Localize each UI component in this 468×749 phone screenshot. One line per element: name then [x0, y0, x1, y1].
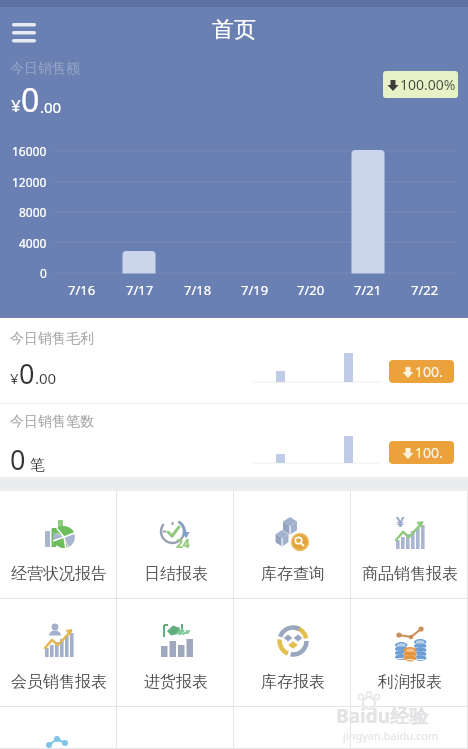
- staticText: 100.: [415, 443, 443, 462]
- staticText: 7/17: [126, 281, 154, 299]
- staticText: 首页: [212, 16, 256, 44]
- staticText: 0: [19, 355, 35, 392]
- staticText: .00: [35, 368, 57, 388]
- button[interactable]: 进货报表: [117, 599, 234, 707]
- staticText: 今日销售毛利: [10, 330, 94, 348]
- button[interactable]: 今日销售毛利: [0, 318, 468, 403]
- staticText: 7/21: [354, 281, 382, 299]
- staticText: 16000: [12, 143, 47, 159]
- staticText: ¥: [10, 368, 19, 388]
- button[interactable]: 100.: [389, 360, 454, 383]
- staticText: ¥: [11, 94, 21, 117]
- staticText: 今日销售笔数: [10, 413, 94, 431]
- button[interactable]: 库存查询: [234, 491, 351, 599]
- staticText: Baidu经验: [336, 703, 429, 729]
- button[interactable]: 24: [117, 491, 234, 599]
- staticText: 7/16: [68, 281, 96, 299]
- staticText: 日结报表: [144, 564, 208, 584]
- button[interactable]: [234, 707, 351, 749]
- button[interactable]: [0, 707, 117, 749]
- staticText: 100.00%: [400, 75, 456, 94]
- staticText: 8000: [19, 204, 47, 220]
- staticText: 利润报表: [378, 672, 442, 692]
- button[interactable]: 会员销售报表: [0, 599, 117, 707]
- staticText: 经营状况报告: [11, 564, 107, 584]
- staticText: 商品销售报表: [362, 564, 458, 584]
- staticText: ¥: [396, 511, 405, 531]
- staticText: 100.: [415, 362, 443, 381]
- staticText: 会员销售报表: [11, 672, 107, 692]
- staticText: 4000: [19, 235, 47, 251]
- button[interactable]: 100.00%: [383, 71, 458, 98]
- staticText: 7/20: [297, 281, 325, 299]
- button[interactable]: [117, 707, 234, 749]
- staticText: 7/22: [411, 281, 439, 299]
- staticText: 今日销售额: [10, 60, 80, 78]
- staticText: .00: [40, 97, 62, 117]
- staticText: 进货报表: [144, 672, 208, 692]
- button[interactable]: 100.: [389, 441, 454, 464]
- staticText: 12000: [12, 174, 47, 190]
- button[interactable]: ¥: [351, 491, 468, 599]
- staticText: 0: [40, 265, 47, 281]
- button[interactable]: 今日销售笔数: [0, 404, 468, 477]
- staticText: 0: [21, 78, 40, 122]
- staticText: jingyan.baidu.com: [343, 728, 439, 743]
- button[interactable]: [10, 20, 46, 48]
- staticText: 7/18: [184, 281, 212, 299]
- staticText: 0: [10, 441, 26, 478]
- button[interactable]: 库存报表: [234, 599, 351, 707]
- staticText: 笔: [26, 454, 45, 474]
- button[interactable]: 经营状况报告: [0, 491, 117, 599]
- button[interactable]: 利润报表: [351, 599, 468, 707]
- staticText: 24: [176, 535, 190, 551]
- staticText: 库存报表: [261, 672, 325, 692]
- button[interactable]: [351, 707, 468, 749]
- staticText: 库存查询: [261, 564, 325, 584]
- staticText: 7/19: [241, 281, 269, 299]
